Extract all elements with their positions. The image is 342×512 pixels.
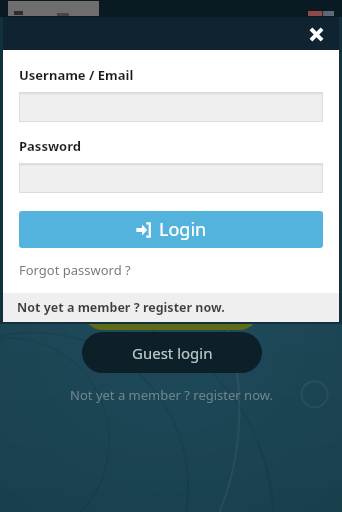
staticText: Not yet a member ? register now. <box>17 299 225 316</box>
button[interactable]: Close <box>301 19 331 49</box>
staticText: Guest login <box>132 343 213 363</box>
staticText: Forgot password ? <box>19 261 131 279</box>
button[interactable]: Not yet a member ? register now. <box>0 386 342 404</box>
button[interactable]: Guest login <box>82 332 262 373</box>
button[interactable]: Not yet a member ? register now. <box>3 293 339 322</box>
button[interactable] <box>82 288 260 330</box>
button[interactable]: Login <box>19 211 323 248</box>
button[interactable]: Forgot password ? <box>19 261 131 279</box>
button[interactable] <box>19 92 323 122</box>
button[interactable] <box>19 163 323 193</box>
staticText: Login <box>159 217 207 242</box>
staticText: Password <box>19 137 81 155</box>
staticText: Not yet a member ? register now. <box>70 386 273 404</box>
staticText: Username / Email <box>19 66 134 84</box>
